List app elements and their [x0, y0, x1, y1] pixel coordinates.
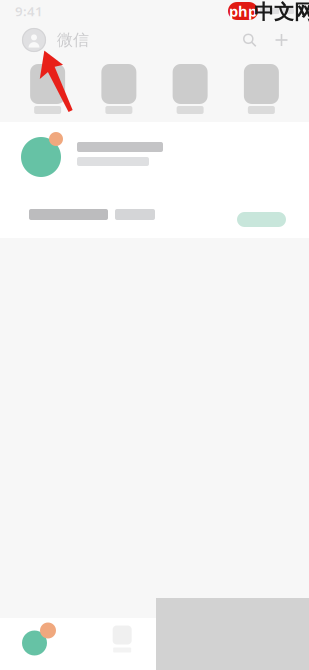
- button[interactable]: Chats: [22, 622, 56, 655]
- staticText: 9:41: [15, 2, 43, 20]
- staticText: 中文网: [254, 0, 309, 24]
- button[interactable]: Open: [237, 212, 286, 227]
- button[interactable]: Open chat: [21, 137, 61, 177]
- button[interactable]: [226, 64, 297, 114]
- button[interactable]: Search: [242, 32, 257, 47]
- button[interactable]: [154, 64, 226, 114]
- button[interactable]: [12, 64, 83, 114]
- button[interactable]: Profile: [22, 28, 46, 52]
- staticText: 微信: [57, 30, 89, 50]
- staticText: php: [229, 1, 257, 21]
- button[interactable]: Tab: [113, 625, 132, 652]
- button[interactable]: [83, 64, 154, 114]
- button[interactable]: Add: [257, 32, 289, 47]
